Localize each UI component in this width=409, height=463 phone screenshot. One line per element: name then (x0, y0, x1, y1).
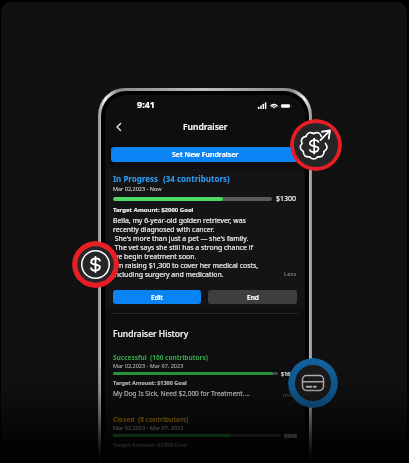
staticText: In Progress (113, 173, 159, 184)
staticText: My Dog Is Sick, Need $2,000 for Treatmen… (113, 389, 250, 398)
staticText: $900 (284, 432, 297, 439)
button[interactable]: Payment method (288, 358, 338, 408)
staticText: Mar 02,2023 - Now (113, 185, 162, 192)
button[interactable]: Set New Fundraiser (111, 147, 299, 162)
button[interactable]: Donate (72, 241, 119, 288)
button[interactable]: End (208, 290, 297, 304)
staticText: (34 contributors) (163, 173, 230, 184)
staticText: Fundraiser History (113, 328, 189, 340)
staticText: $1600 (281, 370, 297, 377)
staticText: $1300 (276, 194, 297, 204)
staticText: Mar 02,2023 - Mar 07, 2023 (113, 362, 184, 369)
button[interactable]: Successful (113, 353, 297, 386)
staticText: Bella, my 6-year-old golden retriever, w… (113, 216, 259, 279)
staticText: (100 contributors) (150, 353, 208, 362)
button[interactable]: Closed (113, 415, 297, 448)
staticText: Closed (113, 415, 135, 424)
button[interactable]: Back (111, 119, 127, 135)
staticText: Mar 02,2023 - Mar 07, 2023 (113, 424, 184, 431)
staticText: Successful (113, 353, 147, 362)
staticText: Target Amount: $1300 Goal (113, 379, 187, 386)
staticText: Target Amount: $2000 Goal (113, 206, 194, 214)
staticText: Edit (151, 293, 164, 302)
button[interactable]: Boost fundraiser (290, 119, 342, 171)
staticText: End (247, 293, 259, 302)
staticText: Fundraiser (183, 121, 228, 133)
staticText: more (283, 391, 297, 398)
button[interactable]: Edit (113, 290, 201, 304)
staticText: 9:41 (137, 98, 155, 110)
button[interactable]: Less (284, 270, 297, 278)
staticText: (8 contributors) (138, 415, 189, 424)
staticText: Target Amount: $1300 Goal (113, 441, 187, 448)
staticText: Set New Fundraiser (172, 150, 239, 160)
